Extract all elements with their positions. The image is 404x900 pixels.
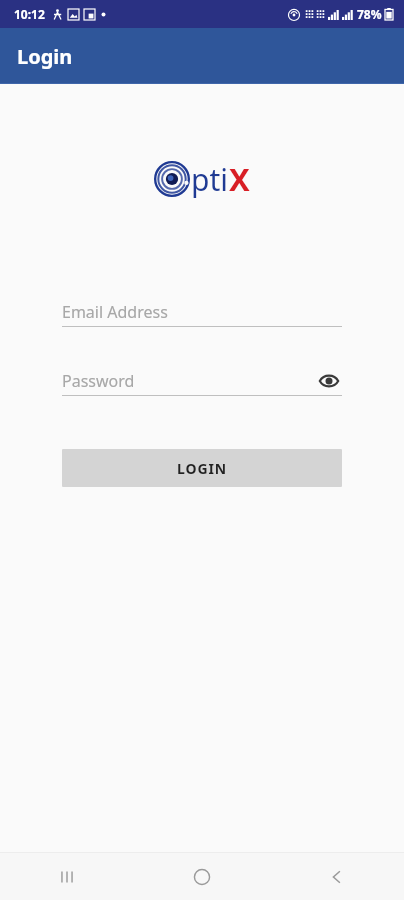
staticText: 10:12	[14, 6, 45, 22]
staticText: LOGIN	[177, 459, 228, 478]
button[interactable]: Back	[269, 853, 404, 900]
staticText: Login	[17, 43, 73, 70]
button[interactable]: Home	[134, 853, 269, 900]
staticText: Email Address	[62, 301, 168, 323]
button[interactable]: Password	[62, 367, 342, 396]
button[interactable]: Show password	[316, 368, 342, 394]
button[interactable]: Email Address	[62, 298, 342, 327]
staticText: pti	[191, 159, 229, 200]
staticText: 78%	[357, 6, 382, 22]
button[interactable]: LOGIN	[62, 449, 342, 487]
staticText: Password	[62, 370, 135, 392]
staticText: X	[229, 158, 250, 200]
button[interactable]: Recent apps	[0, 853, 134, 900]
